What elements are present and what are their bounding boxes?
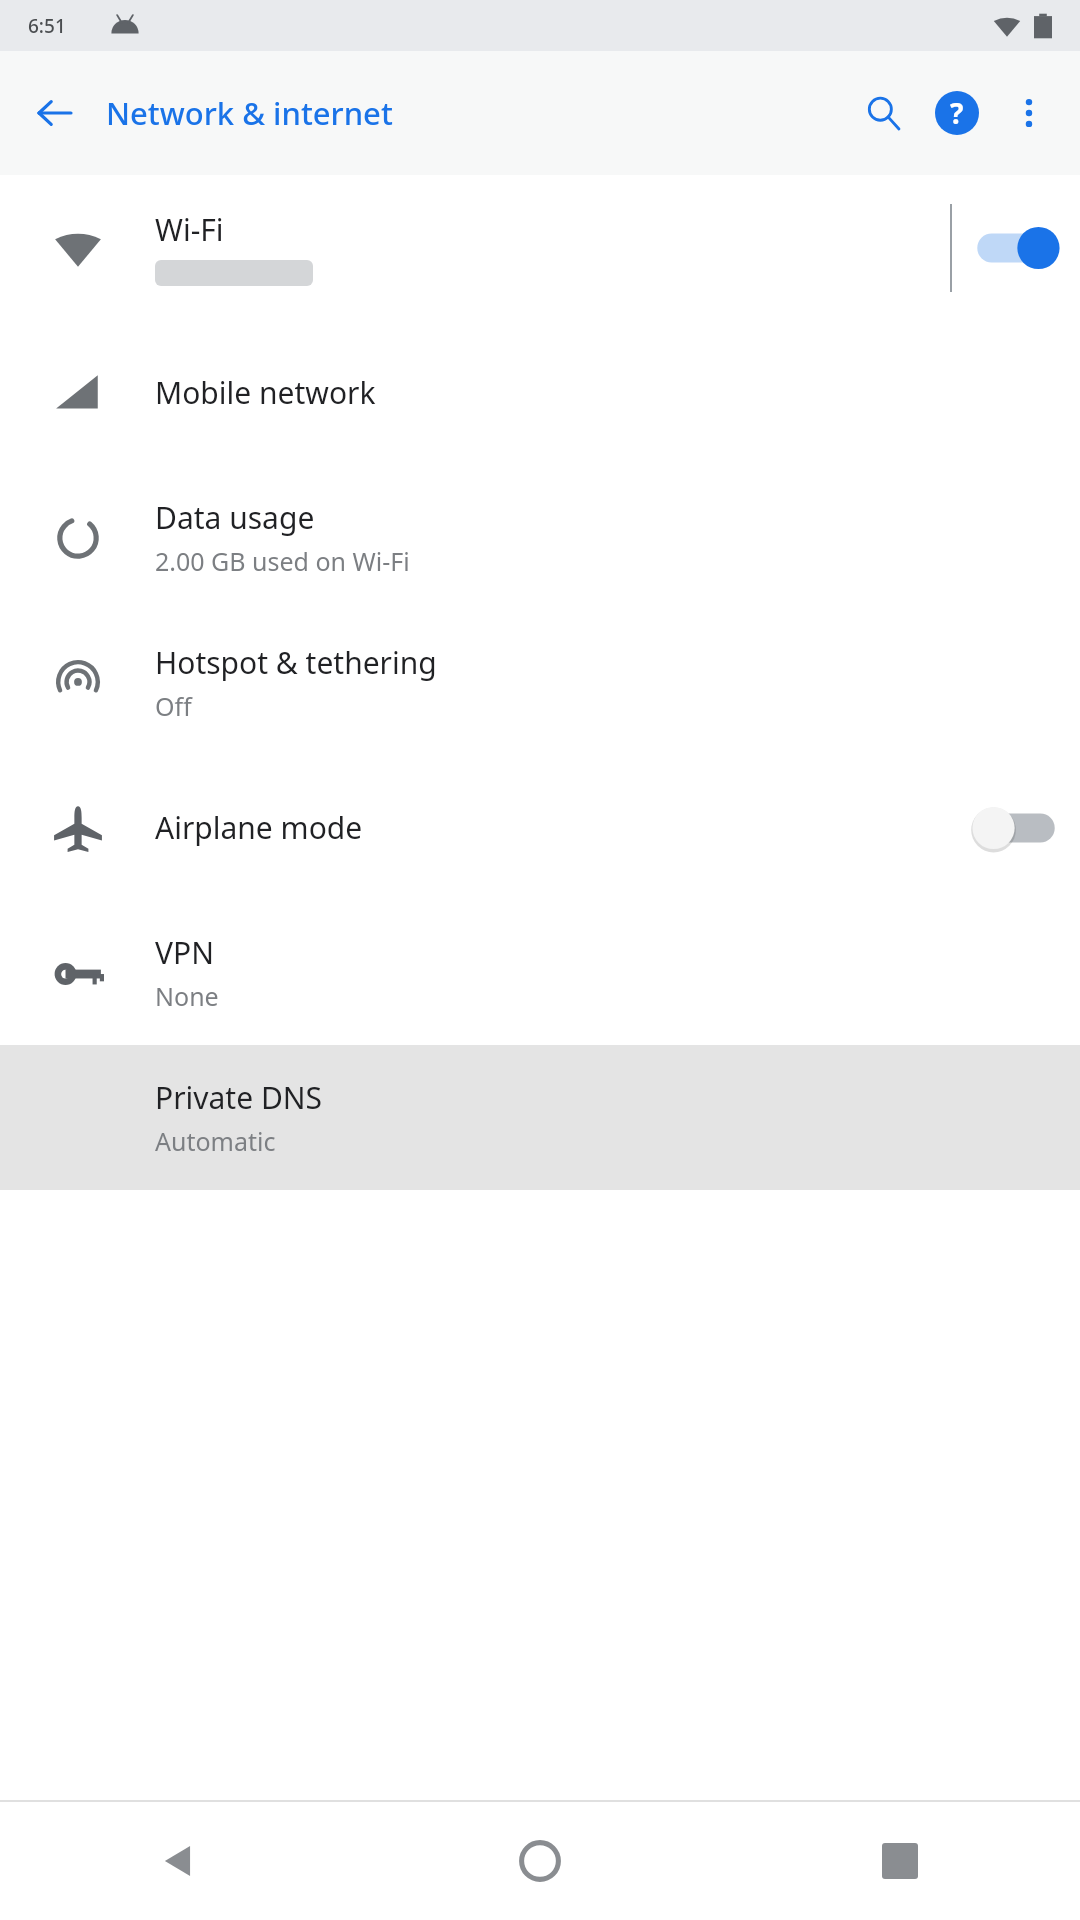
button[interactable]: Airplane mode <box>0 755 1080 900</box>
staticText: Private DNS <box>155 1077 323 1118</box>
staticText: Data usage <box>155 497 315 538</box>
staticText: 6:51 <box>28 13 66 39</box>
button[interactable]: Data usage <box>0 465 1080 610</box>
button[interactable]: Private DNS <box>0 1045 1080 1190</box>
button[interactable]: Back <box>22 80 88 146</box>
staticText: Mobile network <box>155 372 376 413</box>
button[interactable]: Home <box>360 1802 720 1920</box>
button[interactable]: Back <box>0 1802 360 1920</box>
button[interactable]: Airplane mode toggle <box>952 755 1080 900</box>
button[interactable]: Hotspot & tethering <box>0 610 1080 755</box>
staticText: ? <box>950 94 964 132</box>
button[interactable]: Help <box>920 76 994 150</box>
staticText: Automatic <box>155 1124 276 1158</box>
staticText: 2.00 GB used on Wi-Fi <box>155 544 410 578</box>
button[interactable]: Search <box>846 76 920 150</box>
button[interactable]: Wi-Fi <box>0 175 1080 320</box>
button[interactable]: Mobile network <box>0 320 1080 465</box>
staticText: Wi-Fi <box>155 209 224 250</box>
staticText: None <box>155 979 219 1013</box>
staticText: VPN <box>155 932 214 973</box>
staticText: Hotspot & tethering <box>155 642 437 683</box>
staticText: Network & internet <box>106 92 393 134</box>
staticText: Off <box>155 689 192 723</box>
button[interactable]: Recent apps <box>720 1802 1080 1920</box>
button[interactable]: VPN <box>0 900 1080 1045</box>
button[interactable]: Wi-Fi toggle <box>952 175 1080 320</box>
button[interactable]: More options <box>994 78 1064 148</box>
staticText: Airplane mode <box>155 807 363 848</box>
